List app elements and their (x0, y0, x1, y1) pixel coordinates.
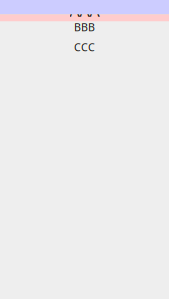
staticText: BBB (74, 20, 95, 34)
staticText: CCC (74, 40, 95, 54)
staticText: AAA (69, 0, 99, 21)
